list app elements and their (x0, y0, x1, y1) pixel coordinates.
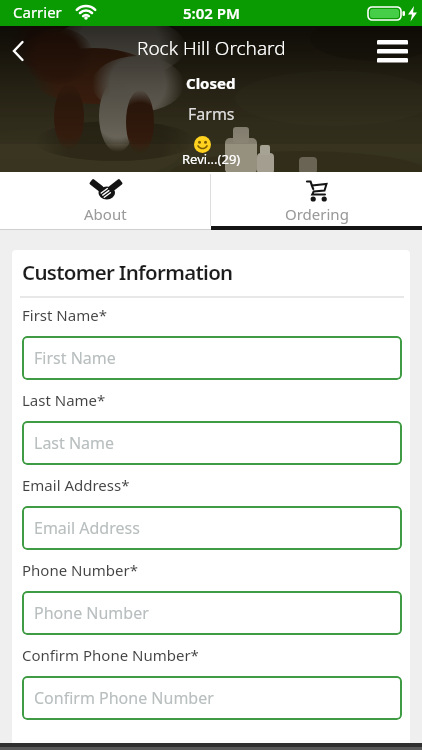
staticText: Email Address* (22, 475, 130, 495)
button[interactable]: Email Address (22, 506, 402, 550)
button[interactable]: Ordering (211, 172, 422, 230)
staticText: First Name (34, 347, 116, 369)
staticText: Ordering (285, 204, 349, 224)
staticText: Carrier (13, 2, 62, 22)
staticText: About (84, 204, 127, 224)
button[interactable]: Phone Number (22, 591, 402, 635)
staticText: Rock Hill Orchard (137, 35, 286, 61)
button[interactable]: About (0, 172, 211, 230)
staticText: Last Name (34, 432, 115, 454)
staticText: Phone Number (34, 602, 149, 624)
button[interactable]: Confirm Phone Number (22, 676, 402, 720)
button[interactable] (370, 32, 416, 72)
staticText: Confirm Phone Number (34, 687, 214, 709)
button[interactable]: Last Name (22, 421, 402, 465)
staticText: Farms (188, 103, 235, 125)
staticText: Phone Number* (22, 560, 138, 580)
staticText: Customer Information (22, 258, 233, 286)
staticText: Closed (186, 73, 236, 93)
button[interactable]: First Name (22, 336, 402, 380)
button[interactable] (2, 34, 36, 68)
staticText: 5:02 PM (183, 3, 240, 23)
staticText: Email Address (34, 517, 140, 539)
staticText: Confirm Phone Number* (22, 645, 199, 665)
staticText: First Name* (22, 305, 107, 325)
staticText: Last Name* (22, 390, 106, 410)
staticText: Revi...(29) (182, 150, 241, 168)
